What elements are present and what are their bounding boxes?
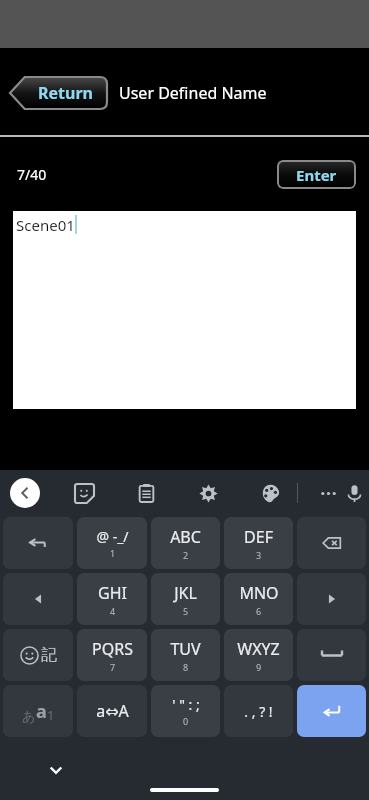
staticText: ABC: [170, 526, 201, 548]
staticText: a⇔A: [96, 700, 129, 722]
button[interactable]: Stickers: [71, 480, 97, 506]
button[interactable]: PQRS: [77, 629, 147, 681]
button[interactable]: Delete: [297, 517, 366, 569]
staticText: 記: [41, 645, 57, 665]
staticText: 2: [183, 549, 189, 561]
button[interactable]: Back: [10, 478, 40, 508]
button[interactable]: Scene01: [13, 211, 356, 409]
staticText: 7: [110, 661, 116, 673]
button[interactable]: TriLeft: [3, 573, 73, 625]
staticText: . , ? !: [244, 702, 273, 721]
staticText: Scene01: [16, 215, 75, 235]
staticText: Enter: [296, 165, 337, 185]
staticText: PQRS: [92, 638, 133, 660]
staticText: 7/40: [17, 165, 47, 184]
staticText: MNO: [239, 582, 279, 604]
button[interactable]: Settings: [195, 480, 221, 506]
button[interactable]: Enter: [277, 160, 356, 189]
staticText: User Defined Name: [119, 82, 267, 104]
button[interactable]: Lang: [3, 685, 73, 737]
button[interactable]: Clipboard: [133, 480, 159, 506]
button[interactable]: WXYZ: [224, 629, 293, 681]
staticText: 1: [110, 547, 116, 559]
staticText: 1: [47, 706, 55, 724]
button[interactable]: @ -_/: [77, 517, 147, 569]
button[interactable]: TUV: [151, 629, 220, 681]
staticText: 5: [183, 605, 189, 617]
button[interactable]: Theme: [257, 480, 283, 506]
staticText: 0: [183, 715, 189, 727]
button[interactable]: Voice input: [341, 480, 367, 506]
staticText: 9: [256, 661, 262, 673]
staticText: 8: [183, 661, 189, 673]
staticText: ' " : ;: [172, 695, 200, 714]
button[interactable]: Emoji: [3, 629, 73, 681]
staticText: JKL: [174, 582, 197, 604]
staticText: @ -_/: [96, 527, 129, 546]
button[interactable]: a⇔A: [77, 685, 147, 737]
button[interactable]: JKL: [151, 573, 220, 625]
staticText: 3: [256, 549, 262, 561]
staticText: あ: [22, 708, 36, 724]
button[interactable]: ABC: [151, 517, 220, 569]
staticText: a: [36, 699, 47, 724]
staticText: 4: [110, 605, 116, 617]
staticText: WXYZ: [237, 638, 280, 660]
button[interactable]: Enter: [297, 685, 366, 737]
button[interactable]: MNO: [224, 573, 293, 625]
button[interactable]: ' " : ;: [151, 685, 220, 737]
staticText: DEF: [244, 526, 273, 548]
button[interactable]: BackArrow: [3, 517, 73, 569]
button[interactable]: TriRight: [297, 573, 366, 625]
staticText: Return: [38, 82, 93, 104]
button[interactable]: DEF: [224, 517, 293, 569]
staticText: 6: [256, 605, 262, 617]
button[interactable]: Space: [297, 629, 366, 681]
button[interactable]: . , ? !: [224, 685, 293, 737]
button[interactable]: Hide keyboard: [44, 758, 68, 782]
button[interactable]: Return: [10, 77, 107, 109]
button[interactable]: More options: [315, 480, 341, 506]
staticText: GHI: [98, 582, 127, 604]
staticText: TUV: [170, 638, 201, 660]
button[interactable]: GHI: [77, 573, 147, 625]
